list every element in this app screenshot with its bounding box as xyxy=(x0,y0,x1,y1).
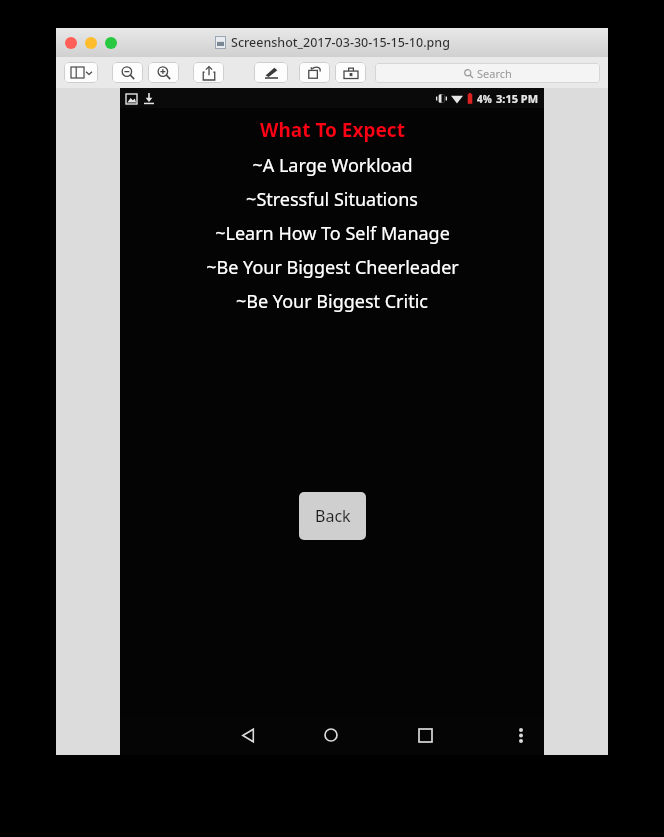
staticText: Screenshot_2017-03-30-15-15-10.png xyxy=(231,34,450,51)
button[interactable]: Share xyxy=(193,62,224,83)
staticText: Search xyxy=(477,66,512,81)
button[interactable]: Back xyxy=(228,715,268,755)
button[interactable]: Rotate xyxy=(299,62,330,83)
staticText: ~Be Your Biggest Critic xyxy=(236,289,428,314)
staticText: Back xyxy=(315,505,351,527)
staticText: ~Learn How To Self Manage xyxy=(215,221,450,246)
staticText: ~Stressful Situations xyxy=(246,187,418,212)
staticText: ~Be Your Biggest Cheerleader xyxy=(206,255,459,280)
button[interactable]: Recents xyxy=(405,715,445,755)
button[interactable]: Search xyxy=(375,63,600,83)
staticText: 3:15 PM xyxy=(496,91,539,106)
button[interactable]: Zoom xyxy=(105,37,117,49)
staticText: 4% xyxy=(477,92,492,106)
button[interactable]: Zoom out xyxy=(112,62,143,83)
button[interactable]: Minimize xyxy=(85,37,97,49)
button[interactable]: Close xyxy=(65,37,77,49)
button[interactable]: Back xyxy=(299,492,366,540)
button[interactable]: Toolbox xyxy=(335,62,366,83)
button[interactable]: Sidebar xyxy=(64,62,98,83)
button[interactable]: Home xyxy=(311,715,351,755)
staticText: ~A Large Workload xyxy=(252,153,413,178)
button[interactable]: Markup xyxy=(254,62,288,83)
staticText: What To Expect xyxy=(260,117,405,143)
button[interactable]: Zoom in xyxy=(148,62,179,83)
button[interactable]: More options xyxy=(504,718,538,752)
